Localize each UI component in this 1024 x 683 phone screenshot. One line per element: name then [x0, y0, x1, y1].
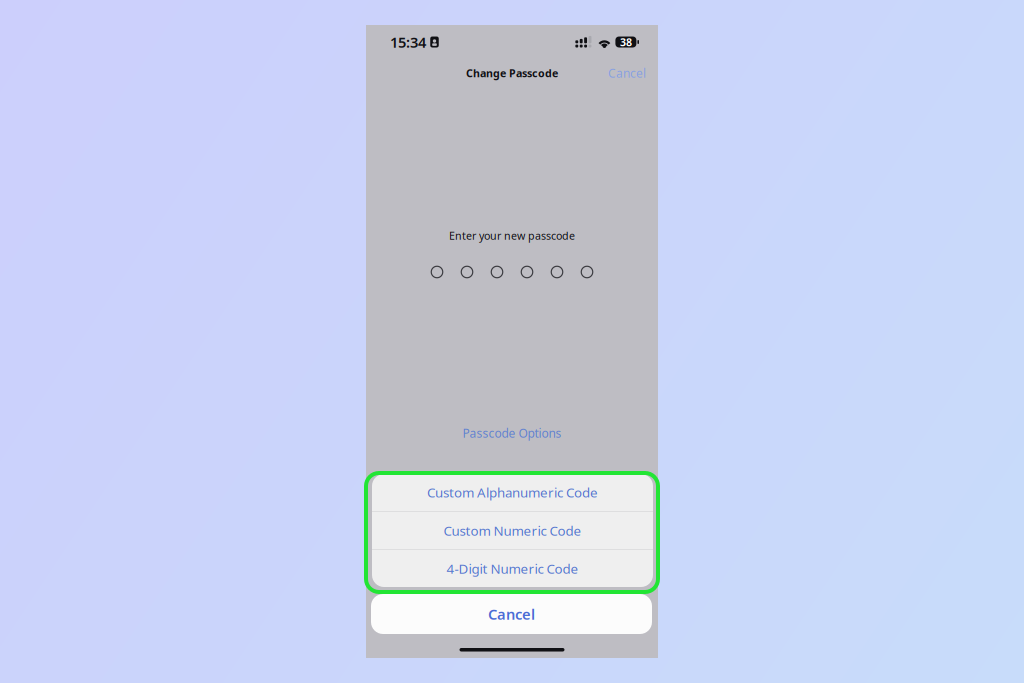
button[interactable]: Cancel: [371, 594, 652, 634]
staticText: Passcode Options: [462, 425, 561, 441]
staticText: Cancel: [488, 604, 535, 624]
staticText: 4-Digit Numeric Code: [446, 560, 578, 577]
button[interactable]: Passcode Options: [451, 421, 573, 445]
staticText: Custom Alphanumeric Code: [427, 483, 598, 501]
staticText: 38: [620, 35, 632, 49]
button[interactable]: 4-Digit Numeric Code: [372, 550, 653, 587]
button[interactable]: Custom Alphanumeric Code: [372, 474, 653, 511]
button[interactable]: Cancel: [576, 58, 646, 88]
staticText: Custom Numeric Code: [443, 522, 581, 539]
button[interactable]: Custom Numeric Code: [372, 512, 653, 549]
staticText: Enter your new passcode: [449, 228, 575, 243]
staticText: 15:34: [390, 32, 426, 52]
staticText: Change Passcode: [466, 66, 558, 80]
staticText: Cancel: [608, 65, 646, 81]
